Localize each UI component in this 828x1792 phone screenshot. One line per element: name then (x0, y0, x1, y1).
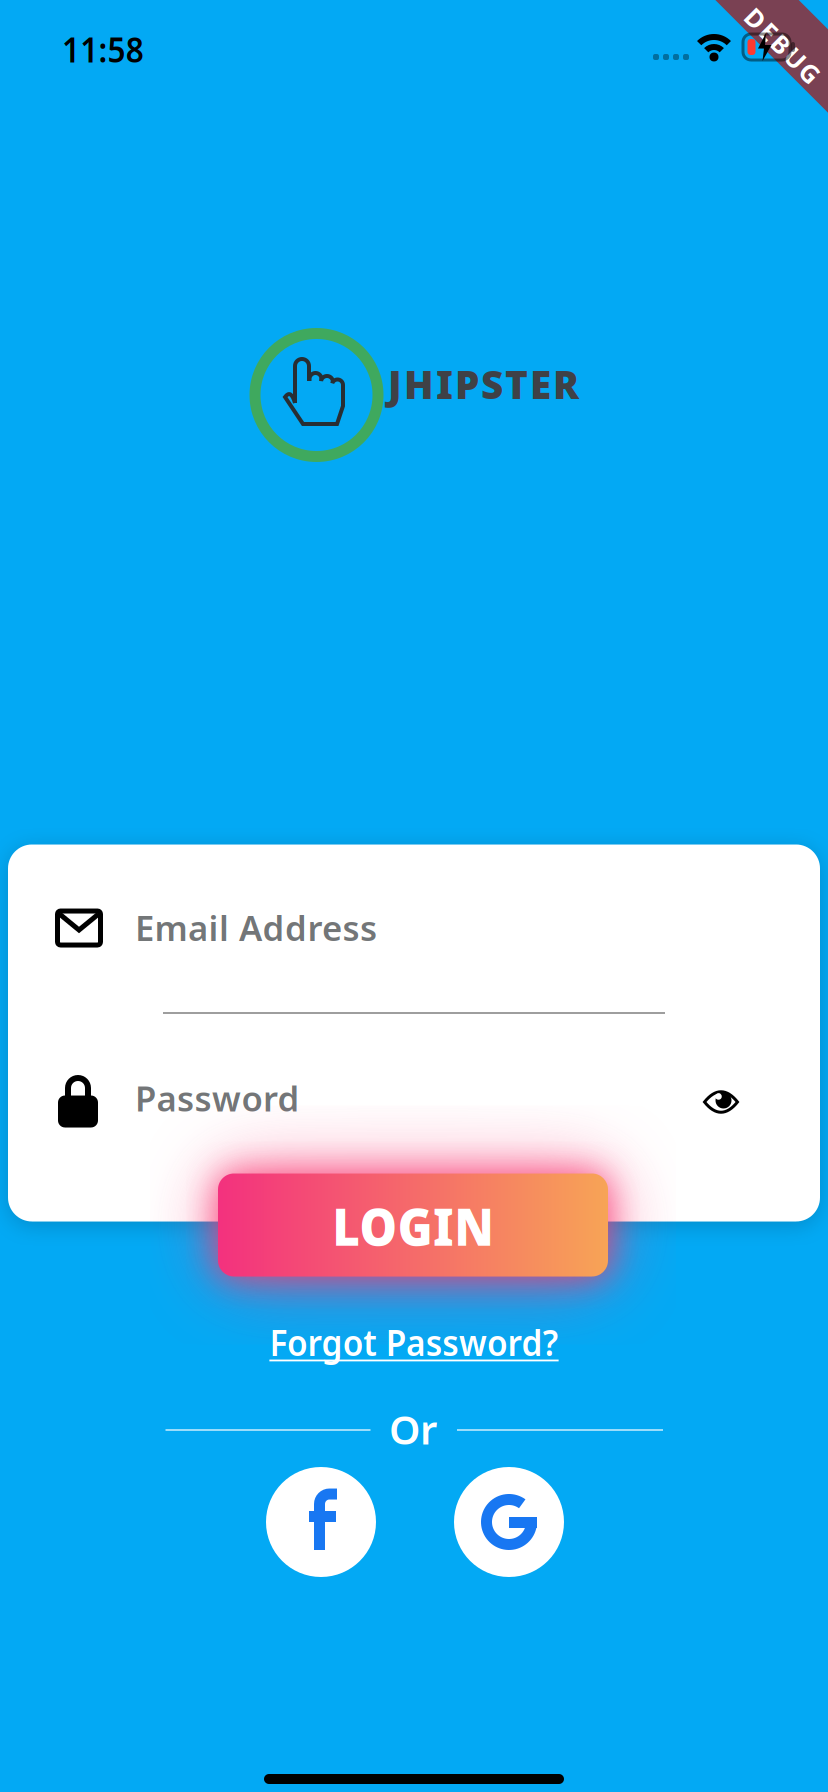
staticText: Password (135, 1075, 299, 1121)
staticText: Email Address (135, 904, 377, 950)
staticText: Forgot Password? (258, 1318, 569, 1366)
button[interactable]: Forgot Password? (258, 1318, 569, 1366)
staticText: Or (389, 1402, 437, 1455)
staticText: LOGIN (326, 1192, 499, 1260)
staticText: 11:58 (58, 26, 148, 72)
staticText: DEBUG (745, 33, 828, 66)
button[interactable] (693, 1080, 749, 1124)
button[interactable]: LOGIN (218, 1173, 608, 1276)
staticText: JHIPSTER (388, 358, 579, 410)
button[interactable]: Password (8, 1027, 820, 1177)
button[interactable] (454, 1467, 564, 1577)
button[interactable] (266, 1467, 376, 1577)
button[interactable]: Email Address (8, 845, 820, 1035)
